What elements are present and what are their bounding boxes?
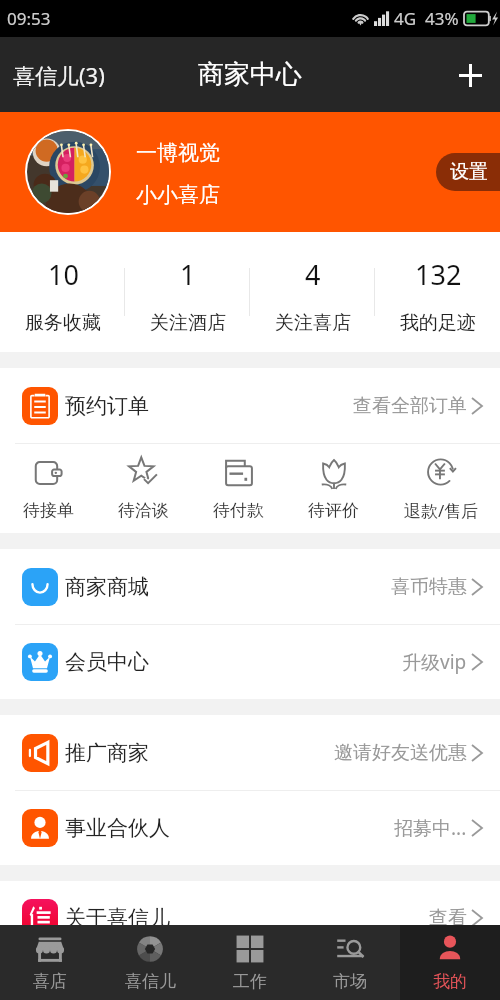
staticText: 待评价: [308, 500, 359, 521]
button[interactable]: 设置: [436, 153, 500, 191]
staticText: 查看: [429, 906, 467, 930]
button[interactable]: 工作: [200, 925, 300, 1000]
staticText: 喜店: [33, 971, 67, 992]
button[interactable]: 待付款: [191, 444, 286, 533]
staticText: 待付款: [213, 500, 264, 521]
button[interactable]: 待洽谈: [96, 444, 191, 533]
staticText: 喜信儿: [125, 971, 176, 992]
staticText: 43%: [425, 7, 459, 30]
staticText: 预约订单: [65, 393, 149, 419]
button[interactable]: 4: [250, 232, 375, 352]
staticText: 一博视觉: [136, 140, 220, 166]
staticText: 会员中心: [65, 649, 149, 675]
button[interactable]: Add: [440, 45, 500, 105]
staticText: 132: [415, 256, 462, 293]
button[interactable]: 会员中心: [0, 625, 500, 699]
button[interactable]: 商家商城: [0, 549, 500, 624]
staticText: 商家中心: [198, 58, 302, 91]
button[interactable]: 推广商家: [0, 715, 500, 790]
staticText: 事业合伙人: [65, 815, 170, 841]
staticText: 推广商家: [65, 740, 149, 766]
staticText: 升级vip: [402, 649, 467, 675]
staticText: 退款/售后: [404, 499, 479, 522]
staticText: 待接单: [23, 500, 74, 521]
staticText: 设置: [450, 160, 488, 184]
button[interactable]: 市场: [300, 925, 400, 1000]
button[interactable]: 喜信儿(3): [0, 52, 113, 98]
button[interactable]: 我的: [400, 925, 500, 1000]
button[interactable]: 待接单: [0, 444, 96, 533]
staticText: 1: [180, 256, 196, 293]
staticText: 查看全部订单: [353, 394, 467, 418]
staticText: 我的: [433, 971, 467, 992]
staticText: 10: [48, 256, 79, 293]
staticText: 待洽谈: [118, 500, 169, 521]
button[interactable]: 1: [125, 232, 250, 352]
button[interactable]: 喜信儿: [100, 925, 200, 1000]
staticText: 我的足迹: [400, 311, 476, 335]
button[interactable]: 退款/售后: [394, 444, 489, 533]
button[interactable]: 事业合伙人: [0, 791, 500, 865]
staticText: 关注喜店: [275, 311, 351, 335]
staticText: 喜币特惠: [391, 575, 467, 599]
staticText: 4: [305, 256, 321, 293]
staticText: 邀请好友送优惠: [334, 741, 467, 765]
staticText: 关于喜信儿: [65, 905, 170, 931]
staticText: 市场: [333, 971, 367, 992]
staticText: 服务收藏: [25, 311, 101, 335]
button[interactable]: 预约订单: [0, 368, 500, 443]
button[interactable]: 132: [375, 232, 500, 352]
staticText: 关注酒店: [150, 311, 226, 335]
button[interactable]: 待评价: [286, 444, 381, 533]
staticText: 09:53: [7, 7, 51, 30]
button[interactable]: 10: [0, 232, 125, 352]
staticText: 商家商城: [65, 574, 149, 600]
button[interactable]: 喜店: [0, 925, 100, 1000]
staticText: 招募中...: [394, 815, 467, 841]
staticText: 工作: [233, 971, 267, 992]
staticText: 小小喜店: [136, 182, 220, 208]
staticText: 4G: [394, 7, 417, 30]
button[interactable]: 关于喜信儿: [0, 881, 500, 925]
